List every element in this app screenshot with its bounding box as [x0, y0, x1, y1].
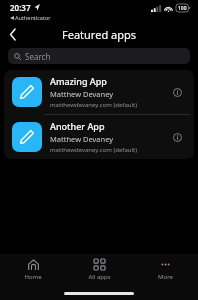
- button[interactable]: Home: [0, 254, 66, 286]
- staticText: All apps: [88, 273, 111, 281]
- staticText: matthewdevaney.com (default): [50, 146, 137, 154]
- button[interactable]: More: [132, 254, 198, 286]
- staticText: 100: [178, 5, 187, 12]
- button[interactable]: Search: [8, 48, 190, 64]
- staticText: 20:37: [10, 2, 31, 13]
- staticText: Matthew Devaney: [50, 89, 114, 99]
- button[interactable]: Info: [168, 128, 186, 146]
- button[interactable]: Info: [168, 83, 186, 101]
- staticText: Another App: [50, 120, 105, 132]
- button[interactable]: Amazing App: [4, 70, 194, 114]
- button[interactable]: All apps: [66, 254, 132, 286]
- staticText: Search: [25, 51, 51, 62]
- button[interactable]: Another App: [4, 115, 194, 159]
- staticText: Matthew Devaney: [50, 134, 114, 144]
- staticText: Home: [24, 273, 42, 281]
- staticText: Amazing App: [50, 75, 107, 87]
- staticText: More: [158, 273, 173, 281]
- staticText: Authenticator: [15, 14, 51, 21]
- staticText: matthewdevaney.com (default): [50, 101, 137, 109]
- staticText: Featured apps: [62, 27, 136, 42]
- button[interactable]: Back: [0, 22, 26, 46]
